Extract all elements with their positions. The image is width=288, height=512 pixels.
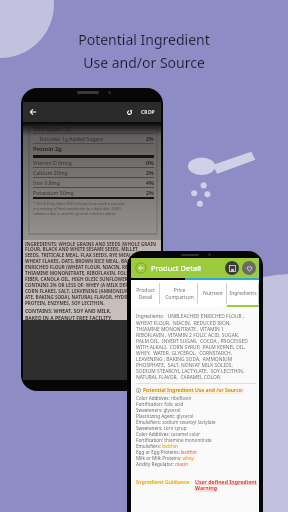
staticText: Emulsifiers: lecithin (136, 443, 178, 449)
staticText: Acidity Regulator: niacin (136, 461, 188, 467)
staticText: Potential Ingredient Use and /or Source: (143, 387, 244, 394)
button[interactable]: Product Detail (131, 280, 160, 307)
button[interactable]: Back (29, 108, 37, 116)
staticText: Sweeteners: corn syrup (136, 425, 187, 431)
staticText: Color Additives: riboflavin (136, 395, 192, 401)
staticText: Nutrient (203, 290, 223, 297)
button[interactable]: User defined Ingredient Warning (195, 478, 257, 492)
staticText: Includes 1g Added Sugars (33, 135, 104, 142)
staticText: Protein 2g (33, 145, 62, 153)
staticText: Total Sugars 2g (33, 126, 71, 133)
staticText: Ingredients: UNBLEACHED ENRICHED FLOUR ,… (136, 313, 248, 380)
staticText: Iron 0.8mg (33, 179, 60, 186)
staticText: Ingredient Guidance (136, 478, 190, 485)
staticText: Sweeteners: glycerol (136, 407, 181, 413)
staticText: INGREDIENTS: WHOLE GRAINS AND SEEDS (WHO… (25, 241, 158, 307)
staticText: Emulsifiers: sodium stearoyl lactylate (136, 419, 216, 425)
staticText: CROP (141, 109, 155, 116)
staticText: Potassium 50mg (33, 189, 74, 196)
staticText: Egg or Egg Proteins: lecithin (136, 449, 197, 455)
staticText: 2% (146, 189, 154, 196)
staticText: Milk or Milk Proteins: whey (136, 455, 194, 461)
staticText: Product Detail (136, 287, 155, 300)
staticText: 4% (146, 179, 154, 186)
staticText: Vitamin D 0mcg (33, 159, 72, 166)
staticText: CONTAINS: WHEAT, SOY AND MILK. BAKED IN … (25, 308, 113, 320)
staticText: Product Detail (151, 263, 202, 273)
staticText: 2% (146, 169, 154, 176)
staticText: * The % Daily Value (DV) tells you how m… (33, 201, 125, 216)
button[interactable]: Favorite (242, 261, 256, 275)
button[interactable]: Rotate (126, 109, 133, 116)
staticText: 2% (146, 135, 154, 142)
button[interactable]: Price Comparison (160, 280, 198, 307)
button[interactable]: Ingredient Guidance (136, 478, 190, 485)
staticText: User defined Ingredient Warning (195, 478, 257, 492)
staticText: Fortification: thiamine mononitrate (136, 437, 212, 443)
staticText: Fortification: folic acid (136, 401, 184, 407)
button[interactable]: Back (135, 262, 147, 274)
button[interactable]: Ingredients (227, 280, 259, 307)
staticText: Calcium 20mg (33, 169, 68, 176)
staticText: Plasticizing Agent: glycerol (136, 413, 194, 419)
staticText: Price Comparison (165, 287, 194, 300)
button[interactable]: Save (225, 261, 239, 275)
button[interactable]: Nutrient (198, 280, 227, 307)
staticText: 0% (146, 159, 154, 166)
staticText: Use and/or Source (83, 53, 205, 72)
staticText: Potential Ingredient (78, 30, 210, 49)
staticText: Color Additives: caramel color (136, 431, 201, 437)
button[interactable]: CROP (141, 109, 155, 116)
staticText: Ingredients (229, 290, 257, 297)
